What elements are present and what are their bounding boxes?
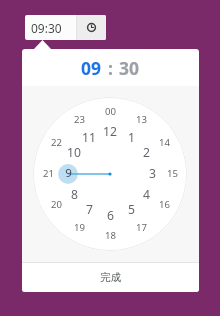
staticText: 5 (128, 201, 135, 218)
button[interactable]: 21 (38, 163, 58, 183)
staticText: 19 (74, 221, 85, 234)
button[interactable]: 11 (79, 127, 99, 147)
staticText: 21 (43, 167, 54, 180)
staticText: 20 (51, 198, 62, 211)
button[interactable]: 3 (142, 163, 162, 183)
staticText: 09:30 (31, 20, 62, 36)
staticText: 13 (136, 113, 147, 126)
button[interactable]: 18 (100, 225, 120, 245)
staticText: 3 (149, 165, 156, 182)
button[interactable]: 4 (136, 184, 156, 204)
staticText: 7 (86, 201, 93, 218)
staticText: 17 (136, 221, 147, 234)
button[interactable]: 5 (121, 199, 141, 219)
button[interactable]: 16 (154, 194, 174, 214)
staticText: 14 (159, 136, 170, 149)
staticText: 22 (51, 136, 62, 149)
staticText: 4 (143, 186, 150, 203)
button[interactable]: 2 (136, 142, 156, 162)
staticText: 00 (105, 105, 116, 118)
button[interactable]: 10 (64, 142, 84, 162)
button[interactable]: 22 (46, 132, 66, 152)
button[interactable]: 23 (69, 109, 89, 129)
button[interactable]: 15 (162, 163, 182, 183)
button[interactable]: 00 (100, 101, 120, 121)
staticText: 1 (128, 129, 135, 146)
button[interactable]: 19 (69, 217, 89, 237)
staticText: 6 (107, 207, 114, 224)
staticText: : (108, 56, 113, 80)
button[interactable]: 30 (119, 56, 140, 80)
staticText: 23 (74, 113, 85, 126)
button[interactable]: 9 (58, 163, 78, 183)
button[interactable]: 17 (131, 217, 151, 237)
button[interactable]: 09:30 (25, 15, 106, 40)
button[interactable]: 7 (79, 199, 99, 219)
button[interactable]: 20 (46, 194, 66, 214)
staticText: 10 (67, 144, 81, 161)
button[interactable]: 14 (154, 132, 174, 152)
button[interactable]: 09 (81, 56, 102, 80)
button[interactable]: 完成 (22, 263, 199, 292)
staticText: 完成 (100, 271, 121, 284)
button[interactable]: 13 (131, 109, 151, 129)
staticText: 11 (82, 129, 96, 146)
button[interactable]: 1 (121, 127, 141, 147)
staticText: 18 (105, 229, 116, 242)
button[interactable]: Open time picker (77, 15, 106, 40)
staticText: 9 (65, 165, 72, 181)
staticText: 8 (71, 186, 78, 203)
button[interactable]: 6 (100, 205, 120, 225)
staticText: 12 (103, 123, 117, 140)
button[interactable]: 8 (64, 184, 84, 204)
staticText: 2 (143, 144, 150, 161)
button[interactable]: 12 (100, 121, 120, 141)
staticText: 16 (159, 198, 170, 211)
staticText: 15 (167, 167, 178, 180)
